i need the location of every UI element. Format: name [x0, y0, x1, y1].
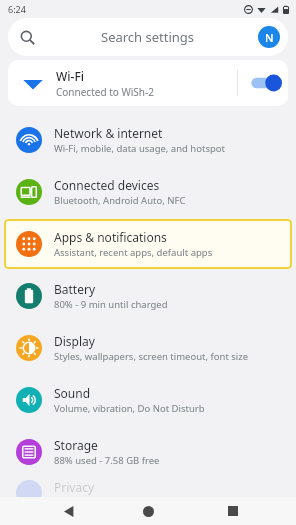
staticText: Wi-Fi, mobile, data usage, and hotspot — [54, 142, 225, 155]
staticText: 88% used - 7.58 GB free — [54, 454, 160, 467]
button[interactable]: Wi-Fi toggle — [248, 69, 278, 97]
button[interactable]: Display — [4, 323, 292, 373]
staticText: Permissions, account activity, personal … — [54, 495, 249, 508]
staticText: Battery — [54, 281, 96, 297]
button[interactable]: Network & internet — [4, 115, 292, 165]
staticText: Apps & notifications — [54, 229, 167, 245]
staticText: Sound — [54, 385, 91, 401]
button[interactable]: Home — [137, 500, 159, 522]
staticText: 80% - 9 min until charged — [54, 298, 168, 311]
staticText: Styles, wallpapers, screen timeout, font… — [54, 350, 249, 363]
staticText: N — [265, 30, 274, 45]
button[interactable]: Storage — [4, 427, 292, 477]
staticText: Volume, vibration, Do Not Disturb — [54, 402, 205, 415]
button[interactable]: Back — [58, 500, 80, 522]
staticText: Assistant, recent apps, default apps — [54, 246, 213, 259]
staticText: Wi-Fi — [56, 68, 84, 84]
staticText: Network & internet — [54, 125, 163, 141]
staticText: Connected to WiSh-2 — [56, 85, 154, 99]
button[interactable]: Recents — [222, 500, 244, 522]
button[interactable]: Sound — [4, 375, 292, 425]
staticText: Connected devices — [54, 177, 160, 193]
button[interactable]: Connected devices — [4, 167, 292, 217]
button[interactable]: Apps & notifications — [4, 219, 292, 269]
button[interactable]: Search settings — [8, 18, 288, 56]
staticText: Privacy — [54, 479, 95, 495]
staticText: Bluetooth, Android Auto, NFC — [54, 194, 186, 207]
staticText: Display — [54, 333, 95, 349]
staticText: 6:24 — [8, 3, 26, 15]
staticText: Storage — [54, 437, 98, 453]
button[interactable]: Account — [258, 26, 280, 48]
button[interactable]: Battery — [4, 271, 292, 321]
button[interactable]: Wi-Fi — [8, 60, 288, 106]
staticText: Search settings — [101, 28, 195, 46]
